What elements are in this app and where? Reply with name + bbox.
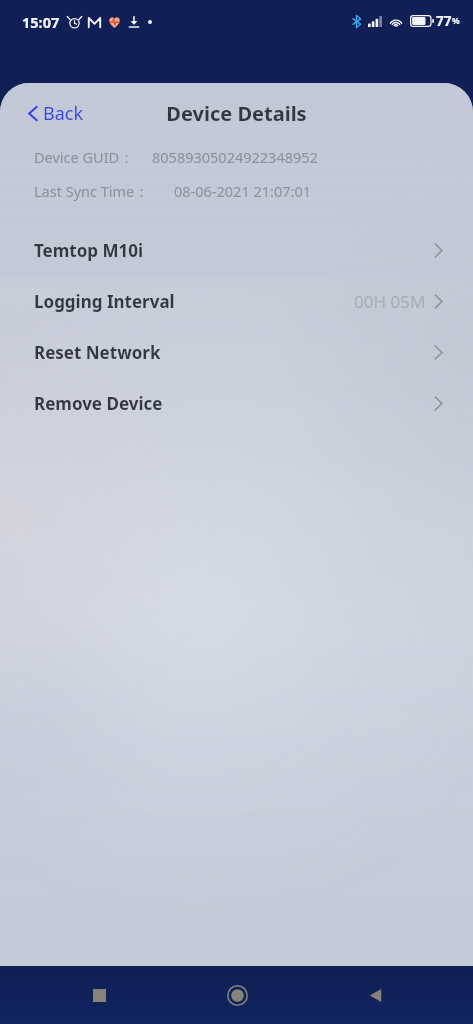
staticText: 15:07 — [22, 12, 60, 32]
staticText: 08-06-2021 21:07:01 — [174, 181, 311, 201]
staticText: 00H 05M — [354, 290, 426, 313]
button[interactable]: Reset Network — [0, 327, 473, 378]
staticText: Device GUID： — [34, 147, 152, 167]
button[interactable]: Temtop M10i — [0, 225, 473, 276]
staticText: Last Sync Time： — [34, 181, 174, 201]
staticText: 77 — [436, 12, 452, 30]
staticText: Back — [43, 101, 84, 126]
staticText: Temtop M10i — [34, 239, 144, 262]
button[interactable]: Remove Device — [0, 378, 473, 429]
button[interactable]: Logging Interval — [0, 276, 473, 327]
staticText: 80589305024922348952 — [152, 147, 318, 167]
button[interactable]: Back — [0, 95, 98, 132]
staticText: % — [452, 15, 460, 27]
staticText: Reset Network — [34, 341, 161, 364]
button[interactable]: Back — [349, 969, 401, 1021]
staticText: Device Details — [0, 100, 473, 127]
button[interactable]: Recent apps — [73, 969, 125, 1021]
button[interactable]: Home — [211, 969, 263, 1021]
staticText: Logging Interval — [34, 290, 175, 313]
staticText: Remove Device — [34, 392, 163, 415]
